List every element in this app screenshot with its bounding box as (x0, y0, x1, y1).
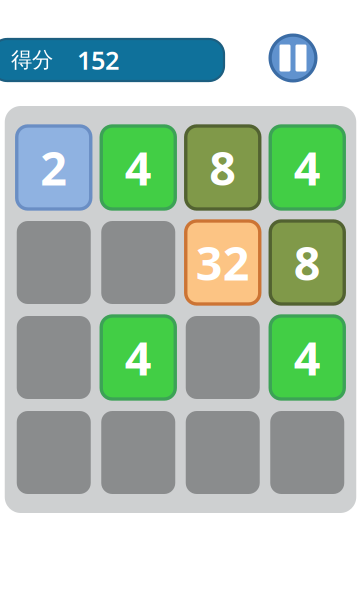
staticText: 4 (125, 326, 152, 388)
staticText: 152 (77, 43, 119, 77)
button[interactable]: Pause (268, 33, 317, 82)
staticText: 4 (125, 136, 152, 198)
staticText: 4 (294, 136, 321, 198)
staticText: 4 (294, 326, 321, 388)
staticText: 8 (294, 231, 321, 293)
staticText: 得分 (11, 47, 53, 73)
staticText: 8 (209, 136, 236, 198)
staticText: 32 (196, 231, 250, 293)
staticText: 2 (40, 136, 67, 198)
button[interactable]: Game board, swipe to move tiles (5, 106, 356, 513)
button[interactable]: 得分 (0, 39, 224, 81)
